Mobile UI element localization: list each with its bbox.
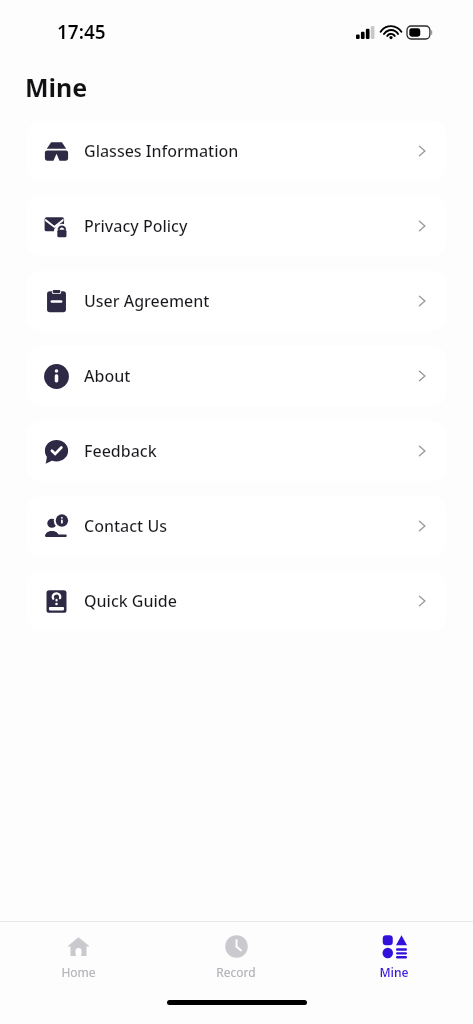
button[interactable]: Mine [315,922,473,980]
button[interactable]: Glasses Information [27,121,446,181]
button[interactable]: Home [0,922,157,980]
staticText: About [84,365,131,387]
staticText: User Agreement [84,290,210,312]
staticText: Contact Us [84,515,167,537]
button[interactable]: Record [157,922,315,980]
staticText: 17:45 [57,19,106,45]
staticText: Feedback [84,440,157,462]
button[interactable]: Contact Us [27,496,446,556]
staticText: Mine [379,964,409,980]
button[interactable]: Feedback [27,421,446,481]
button[interactable]: About [27,346,446,406]
staticText: Record [216,964,256,980]
button[interactable]: Privacy Policy [27,196,446,256]
staticText: Mine [25,70,88,104]
staticText: Quick Guide [84,590,177,612]
staticText: Privacy Policy [84,215,188,237]
staticText: Glasses Information [84,140,239,162]
button[interactable]: Quick Guide [27,571,446,631]
button[interactable]: User Agreement [27,271,446,331]
staticText: Home [61,964,96,980]
